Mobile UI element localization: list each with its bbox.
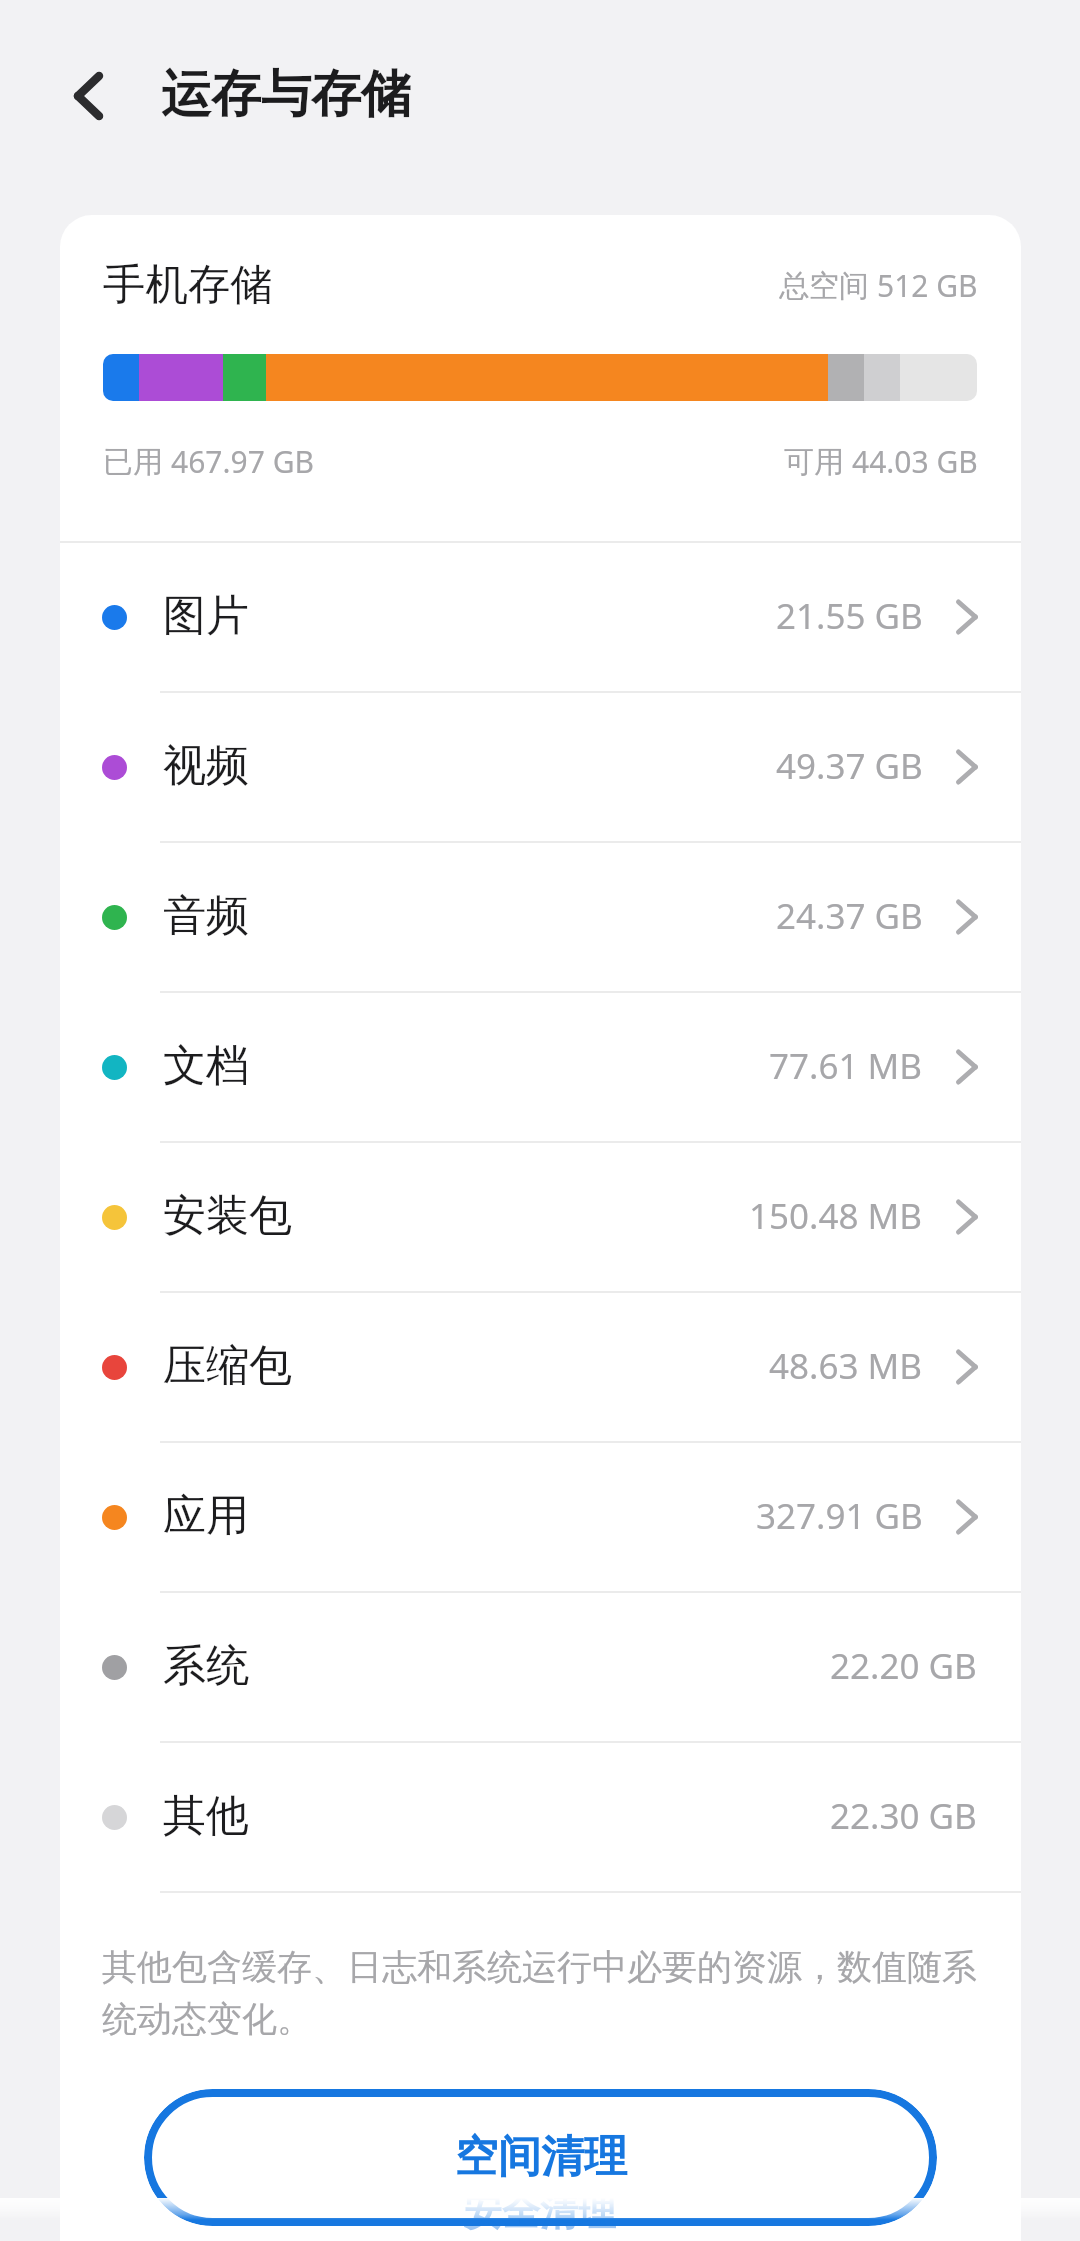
staticText: 327.91 GB xyxy=(756,1496,923,1538)
staticText: 150.48 MB xyxy=(749,1196,923,1238)
staticText: 压缩包 xyxy=(163,1340,292,1394)
staticText: 总空间 xyxy=(779,266,869,306)
staticText: 空间清理 xyxy=(455,2132,627,2184)
staticText: 已用 xyxy=(103,442,163,482)
button[interactable]: 空间清理 xyxy=(144,2089,937,2226)
staticText: 安装包 xyxy=(163,1190,292,1244)
button[interactable]: 视频 xyxy=(60,693,1021,843)
staticText: 音频 xyxy=(163,890,249,944)
button[interactable]: 安装包 xyxy=(60,1143,1021,1293)
button[interactable]: 文档 xyxy=(60,993,1021,1143)
staticText: 可用 xyxy=(784,442,844,482)
staticText: 图片 xyxy=(163,590,249,644)
staticText: 系统 xyxy=(163,1640,249,1694)
staticText: 22.30 GB xyxy=(830,1796,977,1838)
staticText: 视频 xyxy=(163,740,249,794)
staticText: 其他 xyxy=(163,1790,249,1844)
staticText: 512 GB xyxy=(877,266,978,306)
staticText: 手机存储 xyxy=(103,259,273,313)
button[interactable]: 图片 xyxy=(60,543,1021,693)
button[interactable]: 系统 xyxy=(60,1593,1021,1743)
staticText: 467.97 GB xyxy=(171,442,314,482)
staticText: 24.37 GB xyxy=(776,896,923,938)
staticText: 22.20 GB xyxy=(830,1646,977,1688)
button[interactable]: 压缩包 xyxy=(60,1293,1021,1443)
staticText: 44.03 GB xyxy=(852,442,978,482)
staticText: 其他包含缓存、日志和系统运行中必要的资源，数值随系统动态变化。 xyxy=(102,1940,992,2044)
staticText: 安全清理 xyxy=(464,2194,616,2236)
button[interactable]: 应用 xyxy=(60,1443,1021,1593)
button[interactable]: 其他 xyxy=(60,1743,1021,1893)
button[interactable]: Back xyxy=(54,62,122,130)
staticText: 48.63 MB xyxy=(769,1346,923,1388)
staticText: 运存与存储 xyxy=(161,66,411,126)
staticText: 49.37 GB xyxy=(776,746,923,788)
staticText: 应用 xyxy=(163,1490,249,1544)
staticText: 文档 xyxy=(163,1040,249,1094)
staticText: 77.61 MB xyxy=(769,1046,923,1088)
staticText: 21.55 GB xyxy=(776,596,923,638)
button[interactable]: 音频 xyxy=(60,843,1021,993)
